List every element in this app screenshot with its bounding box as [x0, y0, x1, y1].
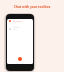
- staticText: Chat with your toolbox: [0, 5, 64, 9]
- button[interactable]: [9, 20, 33, 22]
- button[interactable]: [9, 27, 33, 30]
- button[interactable]: Compose: [18, 57, 22, 61]
